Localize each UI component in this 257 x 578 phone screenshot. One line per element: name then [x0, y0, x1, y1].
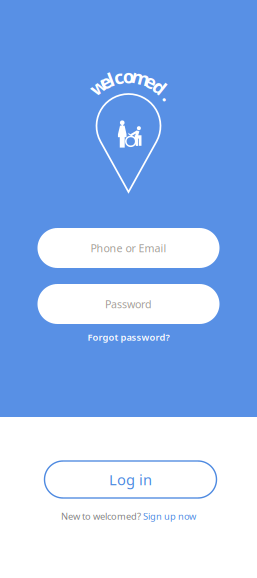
- button[interactable]: Password: [37, 284, 219, 324]
- staticText: c: [123, 64, 133, 88]
- staticText: Sign up now: [143, 510, 196, 522]
- staticText: New to welcomed?: [61, 510, 141, 522]
- staticText: Forgot password?: [87, 331, 169, 343]
- staticText: d: [122, 64, 134, 88]
- button[interactable]: Forgot password?: [79, 328, 177, 346]
- button[interactable]: Phone or Email: [37, 228, 219, 268]
- staticText: o: [122, 64, 134, 88]
- staticText: w: [120, 64, 136, 88]
- button[interactable]: Log in: [42, 461, 214, 498]
- staticText: l: [125, 64, 131, 88]
- staticText: Password: [105, 297, 152, 311]
- staticText: e: [123, 64, 134, 88]
- staticText: m: [119, 64, 137, 88]
- staticText: e: [123, 64, 134, 88]
- staticText: Phone or Email: [90, 241, 166, 255]
- button[interactable]: New to welcomed?: [61, 508, 196, 524]
- staticText: Log in: [109, 470, 152, 489]
- staticText: .: [126, 64, 131, 88]
